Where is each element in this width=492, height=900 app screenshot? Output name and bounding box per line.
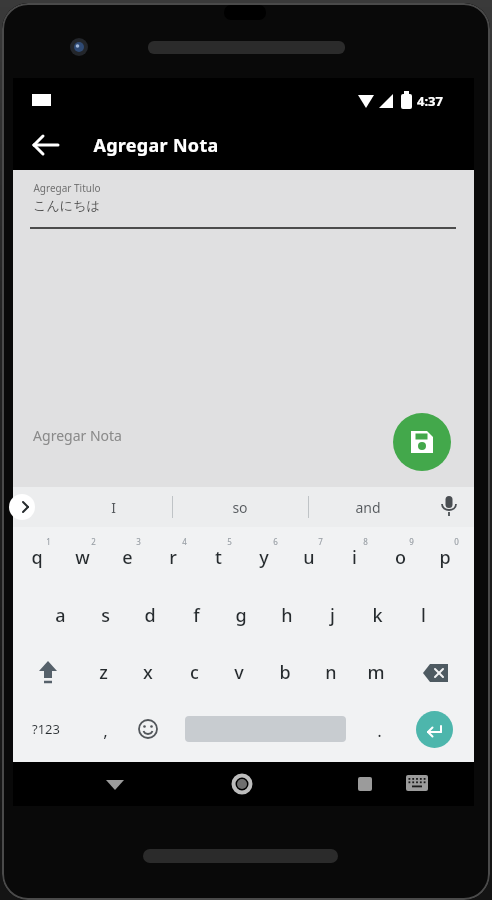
staticText: q — [31, 545, 43, 570]
staticText: 8 — [363, 536, 368, 547]
staticText: i — [352, 545, 357, 570]
button[interactable]: n — [317, 655, 345, 689]
button[interactable]: o — [386, 540, 414, 574]
button[interactable]: k — [363, 598, 391, 632]
button[interactable]: l — [409, 598, 437, 632]
button[interactable]: a — [46, 598, 74, 632]
button[interactable]: g — [227, 598, 255, 632]
button[interactable]: h — [273, 598, 301, 632]
staticText: m — [367, 660, 385, 685]
button[interactable]: and — [328, 492, 408, 522]
staticText: ?123 — [32, 720, 60, 738]
button[interactable]: b — [271, 655, 299, 689]
button[interactable]: z — [89, 655, 117, 689]
button[interactable] — [436, 493, 462, 521]
button[interactable]: y — [250, 540, 278, 574]
staticText: w — [75, 545, 90, 570]
button[interactable]: w — [68, 540, 96, 574]
button[interactable] — [101, 770, 129, 798]
button[interactable]: p — [431, 540, 459, 574]
staticText: t — [215, 545, 222, 570]
button[interactable]: c — [180, 655, 208, 689]
staticText: g — [235, 603, 247, 628]
staticText: 4:37 — [417, 92, 443, 110]
staticText: x — [143, 660, 153, 685]
staticText: d — [144, 603, 156, 628]
staticText: v — [234, 660, 244, 685]
button[interactable]: ?123 — [26, 714, 66, 744]
staticText: 1 — [46, 536, 51, 547]
button[interactable]: so — [200, 492, 280, 522]
staticText: y — [259, 545, 269, 570]
staticText: so — [232, 498, 248, 517]
staticText: h — [281, 603, 293, 628]
staticText: s — [101, 603, 110, 628]
button[interactable]: m — [362, 655, 390, 689]
staticText: f — [193, 603, 200, 628]
button[interactable]: , — [93, 715, 117, 745]
staticText: 6 — [273, 536, 278, 547]
staticText: c — [190, 660, 199, 685]
staticText: and — [355, 498, 381, 517]
button[interactable] — [228, 770, 256, 798]
button[interactable] — [393, 413, 451, 471]
staticText: . — [377, 719, 382, 742]
staticText: 7 — [318, 536, 323, 547]
button[interactable] — [420, 656, 454, 690]
staticText: n — [325, 660, 337, 685]
staticText: j — [330, 603, 335, 628]
button[interactable] — [351, 770, 379, 798]
button[interactable]: j — [318, 598, 346, 632]
button[interactable]: f — [182, 598, 210, 632]
staticText: こんにちは — [33, 197, 100, 213]
button[interactable]: e — [113, 540, 141, 574]
staticText: Agregar Nota — [93, 133, 219, 158]
staticText: p — [439, 545, 451, 570]
button[interactable]: q — [23, 540, 51, 574]
staticText: 2 — [91, 536, 96, 547]
staticText: Agregar Titulo — [33, 181, 101, 195]
button[interactable]: x — [134, 655, 162, 689]
staticText: e — [122, 545, 133, 570]
staticText: r — [169, 545, 177, 570]
button[interactable]: . — [367, 715, 391, 745]
staticText: z — [99, 660, 108, 685]
staticText: a — [55, 603, 66, 628]
button[interactable] — [29, 128, 63, 162]
button[interactable] — [135, 716, 161, 742]
staticText: u — [303, 545, 315, 570]
button[interactable]: r — [159, 540, 187, 574]
button[interactable]: u — [295, 540, 323, 574]
staticText: , — [103, 719, 108, 742]
button[interactable]: d — [136, 598, 164, 632]
button[interactable] — [404, 772, 430, 796]
staticText: l — [421, 603, 426, 628]
button[interactable]: s — [91, 598, 119, 632]
staticText: 3 — [136, 536, 141, 547]
staticText: b — [279, 660, 291, 685]
staticText: I — [111, 498, 116, 517]
button[interactable] — [32, 657, 64, 691]
button[interactable] — [9, 494, 35, 520]
button[interactable]: I — [73, 492, 153, 522]
button[interactable]: v — [225, 655, 253, 689]
staticText: 0 — [454, 536, 459, 547]
button[interactable]: i — [340, 540, 368, 574]
button[interactable] — [416, 711, 453, 748]
staticText: Agregar Nota — [33, 426, 122, 445]
button[interactable]: t — [204, 540, 232, 574]
staticText: o — [395, 545, 406, 570]
staticText: k — [372, 603, 383, 628]
staticText: 4 — [182, 536, 187, 547]
staticText: 5 — [227, 536, 232, 547]
staticText: 9 — [409, 536, 414, 547]
